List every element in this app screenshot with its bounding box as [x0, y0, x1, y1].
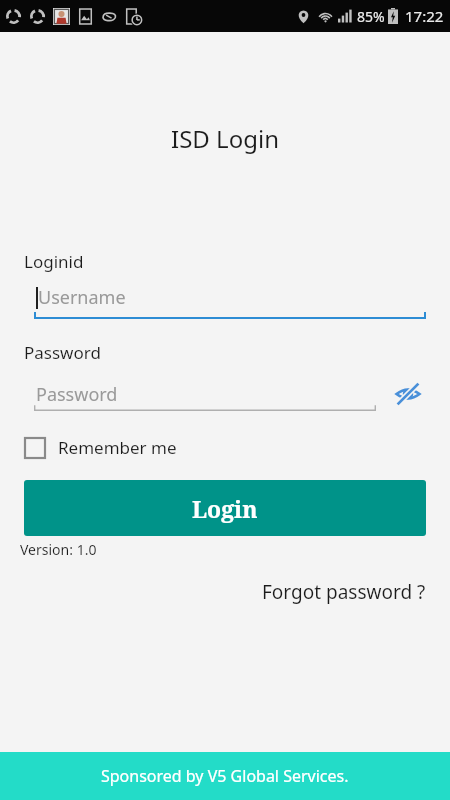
- staticText: Password: [24, 341, 101, 364]
- staticText: 85%: [357, 7, 385, 26]
- staticText: Version: 1.0: [20, 540, 97, 559]
- staticText: Remember me: [58, 436, 177, 459]
- button[interactable]: Username: [24, 285, 426, 319]
- button[interactable]: Password: [24, 377, 376, 411]
- button[interactable]: Remember me: [24, 436, 177, 459]
- button[interactable]: Forgot password ?: [262, 579, 426, 605]
- button[interactable]: Sponsored by V5 Global Services.: [0, 752, 450, 800]
- staticText: Login: [192, 493, 258, 524]
- staticText: Username: [38, 285, 126, 310]
- button[interactable]: Login: [24, 480, 426, 536]
- staticText: 17:22: [405, 6, 444, 26]
- staticText: Sponsored by V5 Global Services.: [101, 765, 349, 787]
- staticText: ISD Login: [0, 122, 450, 155]
- button[interactable]: Show password: [390, 376, 426, 412]
- staticText: Loginid: [24, 250, 84, 273]
- staticText: Password: [36, 382, 118, 407]
